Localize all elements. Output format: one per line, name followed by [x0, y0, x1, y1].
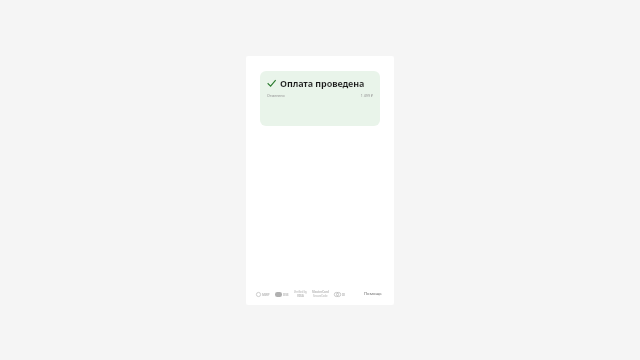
- button[interactable]: Mastercard ID Check: [334, 292, 346, 297]
- staticText: DSS: [283, 293, 289, 297]
- staticText: Помощь: [364, 291, 382, 297]
- staticText: МИР: [262, 293, 270, 297]
- button[interactable]: MasterCard SecureCode: [312, 290, 329, 298]
- button[interactable]: Оплата проведена: [260, 71, 380, 126]
- staticText: SecureCode: [313, 294, 328, 298]
- button[interactable]: Помощь: [362, 289, 384, 299]
- button[interactable]: PCI DSS: [275, 292, 289, 297]
- staticText: VISA: [297, 294, 304, 298]
- staticText: Verified by: [294, 290, 307, 294]
- button[interactable]: Verified by Visa: [294, 290, 307, 298]
- staticText: 1 499 ₽: [360, 93, 373, 98]
- button[interactable]: МИР: [256, 292, 270, 297]
- staticText: Отменено: [267, 93, 285, 98]
- staticText: MasterCard: [312, 290, 329, 294]
- staticText: ID: [342, 293, 346, 297]
- staticText: Оплата проведена: [280, 77, 365, 89]
